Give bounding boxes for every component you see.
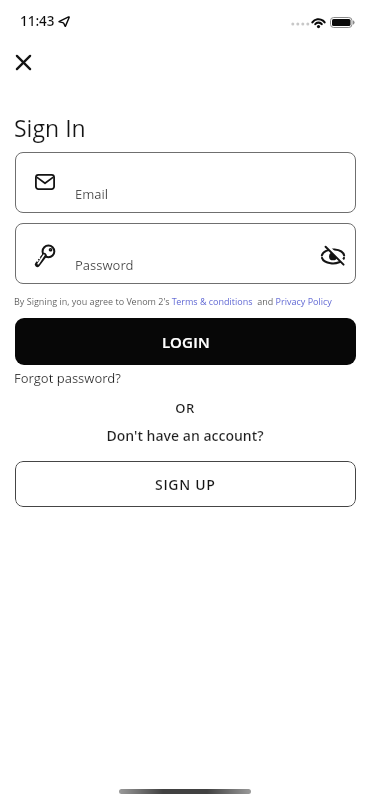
button[interactable] bbox=[321, 246, 345, 266]
staticText: Email bbox=[75, 185, 109, 203]
button[interactable]: LOGIN bbox=[15, 318, 356, 365]
staticText: SIGN UP bbox=[155, 475, 216, 494]
staticText: Password bbox=[75, 256, 134, 274]
staticText: Don't have an account? bbox=[0, 426, 370, 445]
button[interactable] bbox=[8, 47, 39, 78]
staticText: By Signing in, you agree to Venom 2's Te… bbox=[14, 295, 332, 307]
button[interactable]: Password bbox=[15, 223, 356, 284]
staticText: LOGIN bbox=[162, 332, 210, 352]
staticText: OR bbox=[0, 399, 370, 417]
button[interactable]: Email bbox=[15, 152, 356, 213]
button[interactable]: SIGN UP bbox=[15, 461, 356, 507]
staticText: 11:43 bbox=[20, 12, 55, 30]
button[interactable]: Forgot password? bbox=[14, 369, 121, 387]
staticText: Sign In bbox=[14, 112, 86, 143]
